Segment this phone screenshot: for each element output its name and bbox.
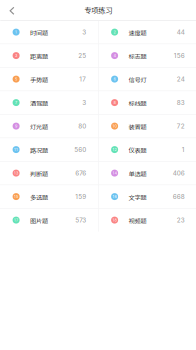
staticText: 18: [113, 218, 117, 222]
button[interactable]: 8: [98, 91, 196, 114]
staticText: 24: [177, 75, 185, 83]
staticText: 1: [182, 146, 185, 153]
staticText: 5: [15, 77, 17, 81]
staticText: 10: [113, 124, 117, 128]
staticText: 17: [79, 75, 86, 83]
staticText: 距离题: [30, 52, 48, 61]
staticText: 23: [177, 216, 185, 224]
staticText: 25: [78, 52, 86, 59]
button[interactable]: 1: [0, 21, 98, 44]
button[interactable]: 13: [0, 162, 98, 185]
button[interactable]: 18: [98, 209, 196, 232]
button[interactable]: 11: [0, 138, 98, 161]
button[interactable]: 12: [98, 138, 196, 161]
staticText: 6: [114, 77, 116, 81]
button[interactable]: 15: [0, 185, 98, 208]
button[interactable]: 10: [98, 115, 196, 138]
staticText: 573: [75, 216, 86, 224]
button[interactable]: 14: [98, 162, 196, 185]
staticText: 406: [173, 169, 185, 177]
staticText: 判断题: [30, 169, 48, 178]
staticText: 11: [14, 147, 18, 152]
staticText: 1: [15, 30, 17, 34]
staticText: 9: [15, 124, 17, 128]
staticText: 156: [174, 52, 185, 59]
staticText: 酒驾题: [30, 99, 48, 108]
staticText: 668: [173, 193, 185, 200]
staticText: 560: [74, 146, 86, 153]
button[interactable]: 16: [98, 185, 196, 208]
button[interactable]: 6: [98, 68, 196, 91]
button[interactable]: 3: [0, 44, 98, 67]
button[interactable]: 2: [98, 21, 196, 44]
staticText: 灯光题: [30, 122, 48, 131]
staticText: 文字题: [129, 193, 147, 202]
staticText: 13: [14, 171, 18, 175]
staticText: 7: [15, 100, 17, 105]
staticText: 3: [82, 28, 86, 36]
staticText: 图片题: [30, 216, 48, 225]
staticText: 3: [15, 53, 17, 58]
staticText: 信号灯: [129, 75, 147, 84]
staticText: 手势题: [30, 75, 48, 84]
button[interactable]: Back: [0, 0, 24, 20]
staticText: 80: [78, 122, 86, 130]
staticText: 仪表题: [129, 146, 147, 155]
button[interactable]: 4: [98, 44, 196, 67]
staticText: 8: [114, 100, 116, 105]
staticText: 676: [75, 169, 86, 177]
staticText: 72: [177, 122, 185, 130]
staticText: 标线题: [129, 99, 147, 108]
staticText: 44: [177, 28, 185, 36]
staticText: 速度题: [129, 28, 147, 37]
staticText: 3: [82, 99, 86, 106]
staticText: 15: [14, 194, 18, 199]
button[interactable]: 5: [0, 68, 98, 91]
button[interactable]: 17: [0, 209, 98, 232]
staticText: 14: [113, 171, 117, 175]
button[interactable]: 7: [0, 91, 98, 114]
staticText: 多选题: [30, 193, 48, 202]
staticText: 83: [177, 99, 185, 106]
staticText: 专项练习: [84, 5, 112, 15]
staticText: 17: [14, 218, 18, 222]
staticText: 单选题: [129, 169, 147, 178]
staticText: 路况题: [30, 146, 48, 155]
staticText: 159: [75, 193, 86, 200]
staticText: 装置题: [129, 122, 147, 131]
staticText: 2: [114, 30, 116, 34]
button[interactable]: 9: [0, 115, 98, 138]
staticText: 时间题: [30, 28, 48, 37]
staticText: 12: [113, 147, 117, 152]
staticText: 16: [113, 194, 117, 199]
staticText: 4: [114, 53, 116, 58]
staticText: 标志题: [129, 52, 147, 61]
staticText: 视频题: [129, 216, 147, 225]
